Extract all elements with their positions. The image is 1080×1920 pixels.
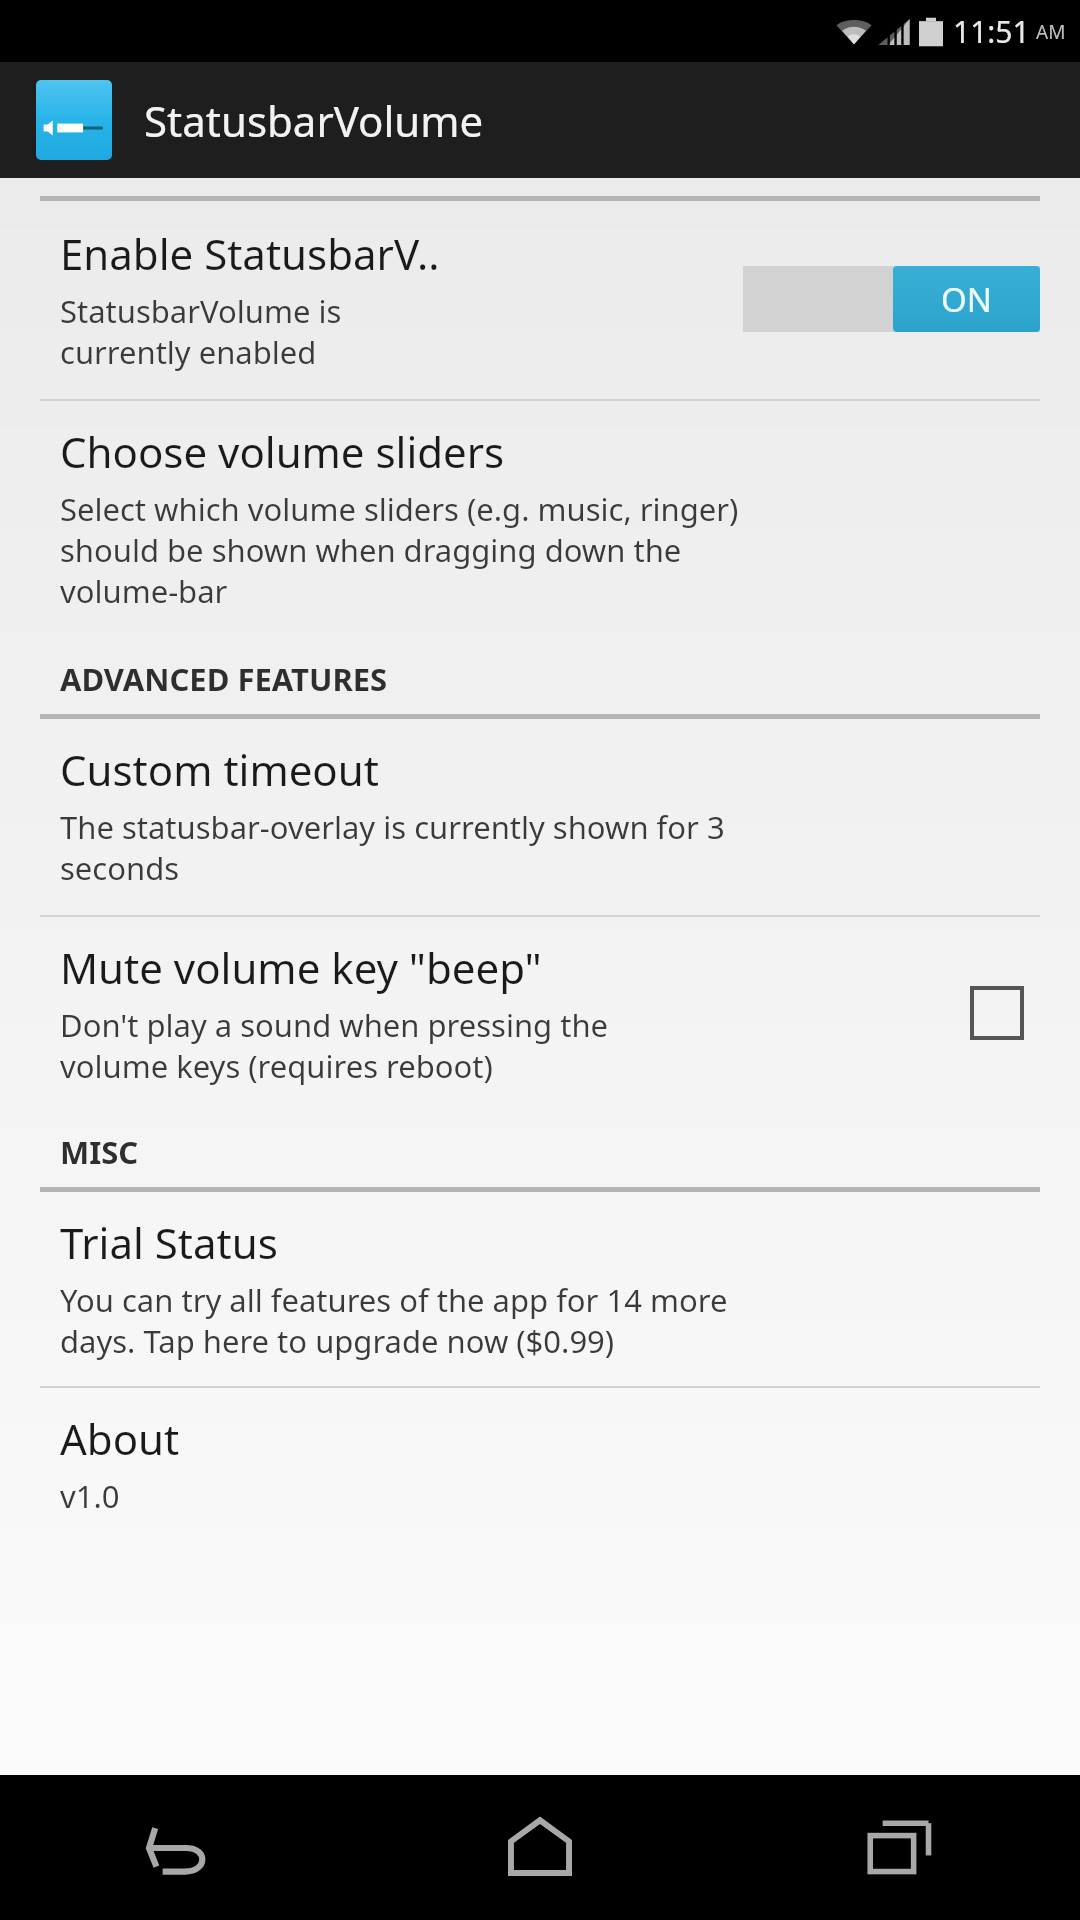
staticText: v1.0: [60, 1475, 120, 1517]
button[interactable]: About: [0, 1388, 1080, 1541]
button[interactable]: Recent apps: [720, 1775, 1080, 1920]
staticText: About: [60, 1410, 180, 1467]
button[interactable]: Custom timeout: [0, 719, 1080, 915]
staticText: Enable StatusbarV..: [60, 225, 440, 282]
button[interactable]: Back: [0, 1775, 360, 1920]
button[interactable]: Enable StatusbarV..: [0, 201, 1080, 399]
staticText: You can try all features of the app for …: [60, 1279, 728, 1362]
staticText: 11:51: [953, 11, 1030, 52]
staticText: Custom timeout: [60, 741, 379, 798]
staticText: Mute volume key "beep": [60, 939, 542, 996]
button[interactable]: Home: [360, 1775, 720, 1920]
button[interactable]: Enable StatusbarVolume toggle: [743, 266, 1040, 332]
staticText: MISC: [60, 1131, 139, 1173]
staticText: AM: [1036, 19, 1066, 45]
button[interactable]: Choose volume sliders: [0, 401, 1080, 638]
staticText: Trial Status: [60, 1214, 278, 1271]
staticText: Choose volume sliders: [60, 423, 505, 480]
button[interactable]: Mute volume key beep checkbox: [954, 970, 1040, 1056]
button[interactable]: Trial Status: [0, 1192, 1080, 1386]
staticText: Don't play a sound when pressing the vol…: [60, 1004, 609, 1087]
staticText: The statusbar-overlay is currently shown…: [60, 806, 725, 889]
staticText: ON: [941, 277, 992, 322]
staticText: StatusbarVolume is currently enabled: [60, 290, 342, 373]
staticText: ADVANCED FEATURES: [60, 658, 388, 700]
staticText: Select which volume sliders (e.g. music,…: [60, 488, 739, 612]
staticText: StatusbarVolume: [144, 92, 484, 149]
button[interactable]: Mute volume key "beep": [0, 917, 1080, 1111]
